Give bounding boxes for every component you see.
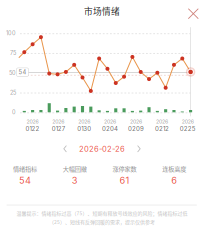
staticText: 2026 xyxy=(156,118,168,125)
staticText: 3 xyxy=(72,175,78,186)
staticText: 50 xyxy=(9,70,16,76)
staticText: 大幅回撤 xyxy=(63,164,87,173)
staticText: 75 xyxy=(10,49,16,56)
staticText: 25 xyxy=(10,89,16,96)
staticText: 2026 xyxy=(52,118,64,125)
staticText: 涨停家数 xyxy=(112,164,136,173)
staticText: 2026 xyxy=(78,118,90,125)
staticText: 0209 xyxy=(128,125,144,133)
staticText: 2026 xyxy=(130,118,142,125)
staticText: 市场情绪 xyxy=(84,5,120,17)
staticText: 2026 xyxy=(182,118,194,125)
staticText: 连板高度 xyxy=(162,164,186,173)
staticText: 0 xyxy=(12,109,16,116)
staticText: 2026 xyxy=(26,118,38,125)
staticText: 54 xyxy=(19,175,31,186)
button[interactable]: Next date xyxy=(133,142,144,156)
staticText: 温馨提示：情绪指标过高（75）、短期有释放号线效应的风险；情绪指标过低 xyxy=(16,209,187,217)
staticText: 61 xyxy=(119,175,129,186)
staticText: 情绪指标 xyxy=(13,164,37,173)
staticText: 0204 xyxy=(102,125,118,133)
staticText: 0225 xyxy=(180,125,196,133)
staticText: 2026 xyxy=(104,118,116,125)
button[interactable]: Close xyxy=(182,3,204,25)
staticText: 54 xyxy=(18,69,26,76)
staticText: 0122 xyxy=(25,125,39,133)
staticText: 0212 xyxy=(155,125,169,133)
staticText: 6 xyxy=(171,175,177,186)
staticText: 2026-02-26 xyxy=(79,144,125,154)
staticText: 0130 xyxy=(77,125,91,133)
button[interactable]: Previous date xyxy=(60,142,71,156)
staticText: 0127 xyxy=(52,125,65,133)
staticText: （25）、短线有反弹回暖的需求，提示仅供参考 xyxy=(49,218,155,225)
staticText: 100 xyxy=(6,30,16,37)
